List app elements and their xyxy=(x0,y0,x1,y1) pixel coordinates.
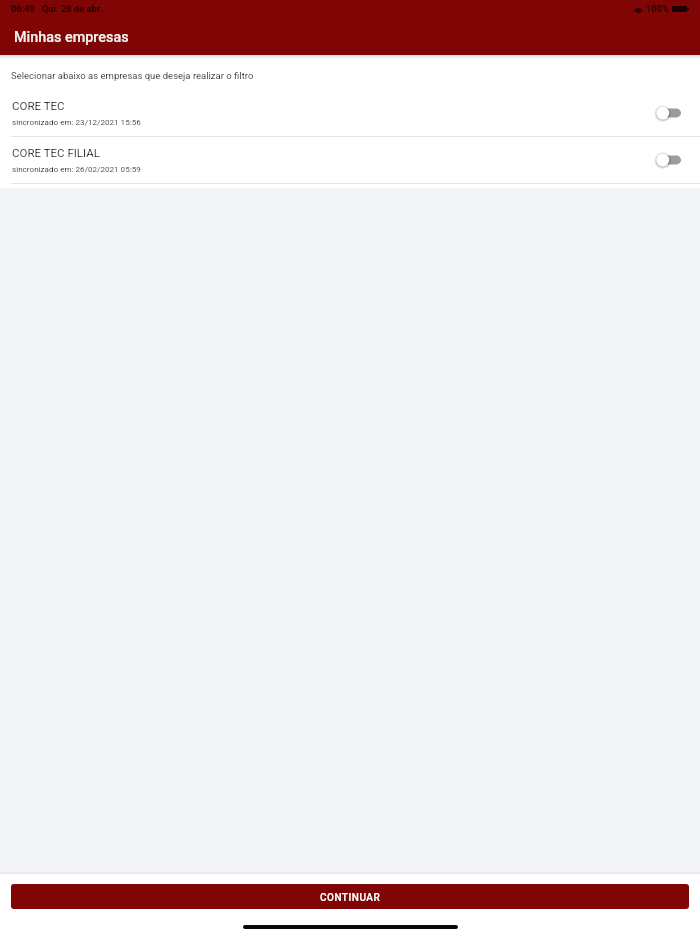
staticText: Selecionar abaixo as empresas que deseja… xyxy=(11,70,254,81)
other: Wi-Fi xyxy=(634,5,643,13)
staticText: sincronizado em: 26/02/2021 05:59 xyxy=(12,164,141,173)
button[interactable]: CORE TEC FILIAL xyxy=(0,137,700,183)
other: Bateria xyxy=(672,6,689,12)
staticText: CORE TEC xyxy=(12,99,65,112)
staticText: Minhas empresas xyxy=(14,29,129,46)
button[interactable]: CORE TEC xyxy=(0,90,700,136)
staticText: CONTINUAR xyxy=(320,892,381,904)
staticText: sincronizado em: 23/12/2021 15:56 xyxy=(12,117,141,126)
button[interactable]: CONTINUAR xyxy=(11,884,689,909)
button[interactable]: Selecionar empresa xyxy=(656,150,681,170)
staticText: 100% xyxy=(646,3,669,14)
staticText: 06:49 Qui. 28 de abr. xyxy=(11,3,103,14)
button[interactable]: Selecionar empresa xyxy=(656,103,681,123)
staticText: CORE TEC FILIAL xyxy=(12,146,100,159)
